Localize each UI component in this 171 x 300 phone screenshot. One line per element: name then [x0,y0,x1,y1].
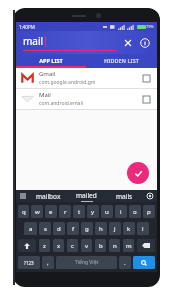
button[interactable]: n [109,239,120,252]
staticText: 79% [146,24,154,29]
staticText: . [124,259,126,267]
button[interactable]: u [101,205,113,218]
staticText: x [57,242,61,250]
staticText: b [99,242,103,250]
staticText: t [78,208,81,216]
button[interactable]: Mail [16,89,157,109]
button[interactable]: mailed [67,190,105,202]
button[interactable]: f [67,222,79,235]
button[interactable]: g [81,222,93,235]
staticText: f [72,225,75,233]
staticText: i [120,208,122,216]
button[interactable]: i [115,205,127,218]
staticText: a [29,225,33,233]
button[interactable]: Search [133,256,155,269]
button[interactable]: k [123,222,135,235]
staticText: z [43,242,46,250]
button[interactable]: x [53,239,64,252]
button[interactable]: Gmail [16,68,157,88]
staticText: HIDDEN LIST [104,57,139,64]
button[interactable]: Confirm selection [127,162,149,184]
button[interactable]: Clear query [121,36,135,50]
button[interactable]: Settings [143,190,157,202]
staticText: s [44,225,47,233]
button[interactable]: APP LIST [16,54,86,66]
button[interactable]: w [31,205,43,218]
staticText: ?123 [24,260,34,266]
button[interactable]: y [87,205,99,218]
button[interactable]: Keyboard options [16,190,30,202]
button[interactable]: t [73,205,85,218]
staticText: w [35,208,40,216]
button[interactable]: s [39,222,51,235]
button[interactable]: mailbox [30,190,67,202]
staticText: com.google.android.gm [39,79,96,86]
button[interactable]: mails [105,190,143,202]
staticText: n [113,242,117,250]
button[interactable]: e [45,205,57,218]
staticText: c [71,242,74,250]
staticText: l [142,225,144,233]
button[interactable]: h [95,222,107,235]
staticText: , [47,259,49,267]
staticText: y [91,208,95,216]
staticText: g [85,225,89,233]
button[interactable]: Tiếng Việt [56,256,117,269]
button[interactable]: Symbols [18,256,40,269]
button[interactable]: HIDDEN LIST [86,54,157,66]
button[interactable]: j [109,222,121,235]
staticText: h [99,225,103,233]
staticText: j [114,225,116,233]
staticText: APP LIST [39,57,63,64]
button[interactable]: Select Gmail [140,72,152,84]
staticText: 1:40PM [19,24,35,30]
button[interactable]: o [129,205,141,218]
staticText: u [105,208,109,216]
button[interactable]: r [59,205,71,218]
staticText: Gmail [39,70,56,78]
staticText: o [133,208,137,216]
button[interactable]: z [39,239,50,252]
staticText: mailed [76,191,97,200]
button[interactable]: v [81,239,92,252]
staticText: d [57,225,61,233]
staticText: m [126,242,132,250]
button[interactable]: b [95,239,106,252]
staticText: e [49,208,53,216]
button[interactable]: . [119,256,131,269]
button[interactable]: Modifier key [137,239,155,252]
staticText: r [64,208,67,216]
button[interactable]: p [143,205,155,218]
staticText: mailbox [36,192,61,201]
button[interactable]: c [67,239,78,252]
button[interactable]: m [123,239,134,252]
staticText: com.android.email [39,100,83,107]
staticText: Tiếng Việt [75,259,99,266]
button[interactable]: Select Mail [140,93,152,105]
button[interactable]: a [24,222,37,235]
staticText: mail [23,34,44,48]
staticText: k [127,225,131,233]
staticText: v [85,242,89,250]
staticText: mails [116,192,133,201]
button[interactable]: d [53,222,65,235]
button[interactable]: Info [138,36,152,50]
button[interactable]: q [18,205,29,218]
staticText: Mail [39,91,51,99]
button[interactable]: l [137,222,149,235]
button[interactable]: , [42,256,54,269]
button[interactable]: Modifier key [18,239,36,252]
staticText: p [147,208,151,216]
staticText: q [22,208,26,216]
